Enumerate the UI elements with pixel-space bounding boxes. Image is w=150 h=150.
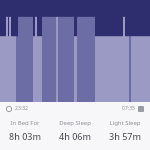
staticText: 4h 06m	[59, 130, 91, 142]
other: Wake time	[138, 106, 144, 112]
staticText: In Bed For	[10, 119, 40, 127]
staticText: Light Sleep	[109, 119, 141, 127]
staticText: 23:32	[15, 105, 28, 112]
staticText: 3h 57m	[109, 130, 141, 142]
staticText: Deep Sleep	[59, 119, 91, 127]
button[interactable]	[0, 0, 150, 102]
button[interactable]: Light Sleep	[100, 119, 150, 142]
staticText: 07:35	[122, 105, 135, 112]
button[interactable]: Deep Sleep	[50, 119, 100, 142]
button[interactable]: In Bed For	[0, 119, 50, 142]
other: Bedtime	[6, 106, 12, 112]
staticText: 8h 03m	[9, 130, 41, 142]
